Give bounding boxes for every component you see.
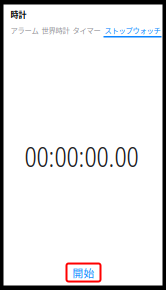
staticText: 世界時計 bbox=[41, 25, 69, 35]
staticText: 時計 bbox=[10, 8, 26, 20]
staticText: 開始 bbox=[72, 265, 94, 280]
button[interactable]: ストップウォッチ bbox=[103, 25, 161, 37]
button[interactable]: 世界時計 bbox=[41, 25, 69, 37]
staticText: タイマー bbox=[72, 25, 100, 35]
button[interactable]: タイマー bbox=[72, 25, 100, 37]
staticText: ストップウォッチ bbox=[104, 25, 160, 35]
staticText: 00:00:00.00 bbox=[24, 138, 138, 175]
button[interactable]: アラーム bbox=[10, 25, 38, 37]
button[interactable]: 開始 bbox=[66, 263, 100, 281]
staticText: アラーム bbox=[10, 25, 38, 35]
